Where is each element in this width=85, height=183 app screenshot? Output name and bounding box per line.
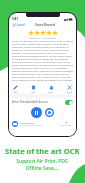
staticText: Edit	[14, 91, 18, 94]
button[interactable]: Camera	[12, 121, 18, 127]
staticText: More	[67, 91, 72, 94]
button[interactable]: Share	[48, 85, 54, 94]
staticText: Rated 4.9 · 2.4k Ratings	[9, 36, 76, 39]
button[interactable]: Toggle available access	[65, 100, 73, 105]
staticText: Enter Files Available Access	[12, 100, 48, 104]
staticText: State of the art OCR	[5, 146, 80, 156]
button[interactable]: Cancel	[12, 23, 25, 27]
staticText: Share	[48, 91, 54, 94]
button[interactable]: Stop	[44, 107, 55, 118]
button[interactable]: Pause	[31, 107, 42, 118]
staticText: Save	[31, 91, 36, 94]
button[interactable]: More	[67, 85, 72, 94]
staticText: IT WAS THE BEST OF TIMES, it was the bes…	[12, 40, 73, 83]
staticText: Voice Record	[35, 23, 55, 27]
staticText: Cancel	[15, 23, 25, 27]
button[interactable]: Edit	[13, 85, 18, 94]
button[interactable]: Save	[31, 85, 36, 94]
staticText: Sort by Date	[60, 124, 73, 127]
staticText: 9:41	[12, 17, 18, 21]
staticText: Support Air Print, PDF, Offline Save,...	[16, 158, 69, 172]
staticText: Voice Record	[20, 121, 35, 124]
button[interactable]: Sort by date	[60, 121, 73, 127]
